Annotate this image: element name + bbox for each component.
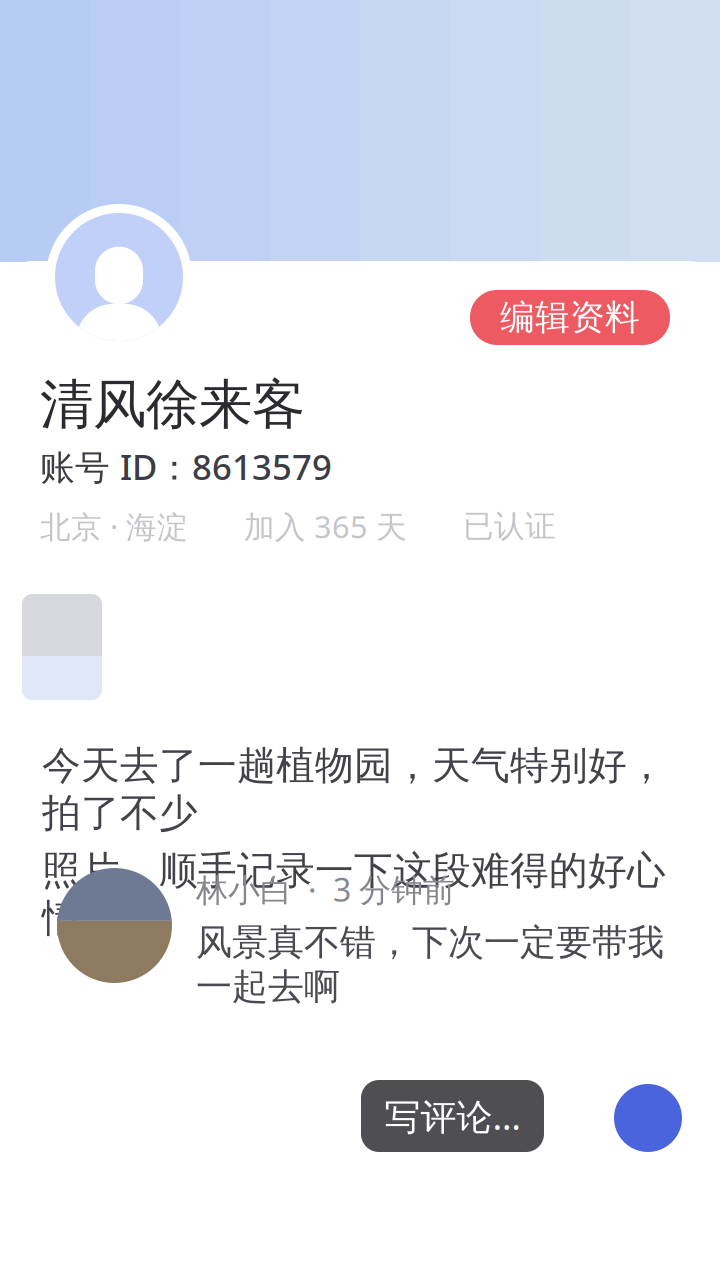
button[interactable]: 写评论… (361, 1080, 544, 1152)
staticText: 已认证 (463, 507, 556, 545)
staticText: 风景真不错，下次一定要带我一起去啊 (196, 920, 664, 1009)
staticText: 账号 ID：8613579 (40, 443, 332, 489)
staticText: 编辑资料 (500, 296, 640, 339)
staticText: 加入 365 天 (244, 506, 407, 547)
button[interactable]: 发送 (614, 1084, 682, 1152)
staticText: 林小白 · 3 分钟前 (196, 868, 455, 910)
staticText: 写评论… (384, 1092, 520, 1140)
staticText: 照片，顺手记录一下这段难得的好心情。 (42, 847, 666, 942)
staticText: 今天去了一趟植物园，天气特别好，拍了不少 (42, 742, 666, 837)
button[interactable]: 编辑资料 (470, 290, 670, 345)
staticText: 清风徐来客 (40, 372, 305, 437)
staticText: 北京 · 海淀 (40, 506, 188, 547)
